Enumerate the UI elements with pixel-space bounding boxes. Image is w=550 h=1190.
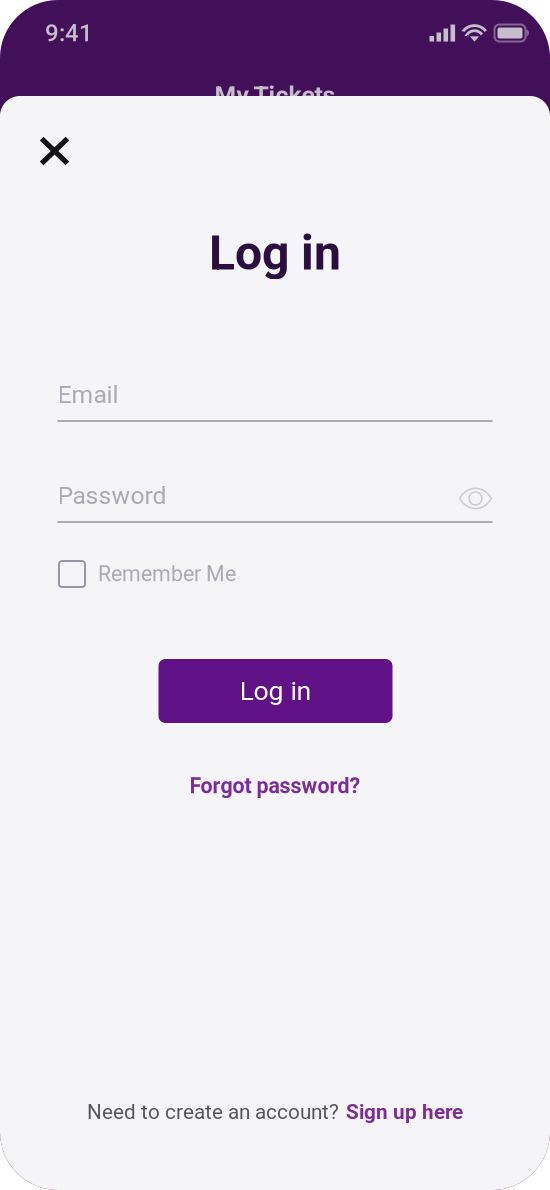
staticText: Forgot password? (189, 773, 360, 798)
staticText: Remember Me (98, 561, 236, 586)
button[interactable]: Log in (158, 659, 392, 723)
staticText: My Tickets (214, 80, 335, 109)
button[interactable]: Sign up here (339, 1100, 463, 1124)
staticText: 9:41 (45, 19, 93, 47)
staticText: Log in (239, 675, 311, 707)
staticText: Need to create an account? (87, 1100, 339, 1124)
staticText: Password (57, 481, 166, 510)
button[interactable]: Remember Me (59, 557, 289, 591)
staticText: Email (57, 380, 118, 409)
staticText: Log in (209, 225, 341, 281)
button[interactable]: Forgot password? (175, 766, 375, 806)
staticText: Sign up here (346, 1100, 463, 1124)
button[interactable]: Close (24, 121, 84, 181)
